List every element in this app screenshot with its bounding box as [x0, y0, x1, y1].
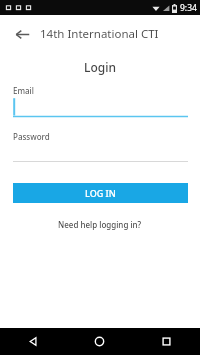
button[interactable]: Need help logging in?: [52, 217, 148, 232]
button[interactable]: LOG IN: [13, 183, 188, 203]
button[interactable]: Back: [9, 21, 35, 47]
staticText: Password: [13, 131, 50, 142]
button[interactable]: Home: [66, 328, 133, 355]
staticText: Login: [0, 59, 200, 75]
button[interactable]: [0, 96, 200, 118]
button[interactable]: Recent apps: [133, 328, 200, 355]
button[interactable]: Back: [0, 328, 66, 355]
staticText: Need help logging in?: [58, 219, 142, 230]
staticText: Email: [13, 85, 34, 96]
staticText: 14th International CTI Confer…: [40, 26, 196, 42]
staticText: 9:34: [180, 2, 197, 14]
button[interactable]: [0, 142, 200, 163]
staticText: LOG IN: [85, 187, 116, 199]
